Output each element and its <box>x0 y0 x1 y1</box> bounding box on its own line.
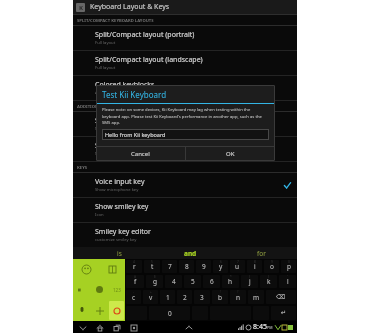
button[interactable]: ! <box>212 290 228 304</box>
staticText: 2 <box>183 293 187 302</box>
staticText: Show microphone key <box>95 187 139 193</box>
button[interactable]: 5 <box>184 275 201 288</box>
button[interactable]: 6 <box>213 260 228 273</box>
staticText: K <box>79 4 83 12</box>
button[interactable]: - <box>126 290 141 304</box>
button[interactable]: and <box>155 247 226 259</box>
staticText: Full layout <box>95 40 116 46</box>
button[interactable]: for <box>226 247 297 259</box>
button[interactable]: $ <box>146 275 163 288</box>
button[interactable]: 0 <box>149 306 190 320</box>
button[interactable]: ) <box>260 275 277 288</box>
staticText: l <box>287 277 289 286</box>
staticText: * <box>230 275 232 279</box>
staticText: KEYS <box>77 165 88 171</box>
staticText: b <box>218 293 222 302</box>
button[interactable]: 3 <box>194 290 210 304</box>
button[interactable]: 9 <box>264 260 279 273</box>
button[interactable]: Home <box>94 322 105 333</box>
staticText: 6 <box>220 260 222 264</box>
button[interactable]: 8 <box>179 260 194 273</box>
button[interactable]: ↵ <box>271 306 296 320</box>
button[interactable]: ⌫ <box>266 290 296 304</box>
staticText: Icon <box>95 212 104 218</box>
staticText: Test Kii Keyboard <box>102 89 167 100</box>
staticText: j <box>249 277 251 286</box>
button[interactable]: 123 <box>108 279 125 300</box>
button[interactable]: Split/Compact layout (portrait) <box>73 26 297 50</box>
button[interactable]: Recent apps <box>111 322 122 333</box>
staticText: + <box>150 290 152 294</box>
button[interactable]: Show smiley key <box>73 198 297 222</box>
staticText: Split/Compact layout (landscape) <box>95 55 203 65</box>
button[interactable]: 0 <box>281 260 296 273</box>
staticText: Keyboard Layout & Keys <box>90 2 170 12</box>
button[interactable]: Show bottom arrow row <box>73 137 297 161</box>
button[interactable]: 4 <box>165 275 182 288</box>
button[interactable]: 6 <box>203 275 220 288</box>
staticText: Split/Compact layout (portrait) <box>95 30 195 40</box>
staticText: f <box>134 277 137 286</box>
button[interactable]: Voice input <box>73 300 91 321</box>
button[interactable]: ( <box>241 275 258 288</box>
button[interactable]: 4 <box>126 260 142 273</box>
button[interactable]: Sound <box>73 279 91 300</box>
button[interactable]: Show top number row <box>73 112 297 136</box>
staticText: i <box>254 262 256 271</box>
button[interactable]: Hide keyboard <box>183 322 194 333</box>
button[interactable]: 5 <box>144 260 160 273</box>
button[interactable]: * <box>222 275 239 288</box>
button[interactable]: Back <box>77 322 88 333</box>
staticText: Voice input key <box>95 177 145 187</box>
button[interactable]: Hello from Kii keyboard <box>102 129 269 140</box>
button[interactable]: is <box>83 247 155 259</box>
button[interactable]: Smiley <box>73 259 99 279</box>
button[interactable]: ? <box>230 290 246 304</box>
staticText: Please note: on some devices, Kii Keyboa… <box>102 107 269 125</box>
button[interactable]: , <box>248 290 264 304</box>
button[interactable]: 2 <box>177 290 192 304</box>
button[interactable]: + <box>143 290 158 304</box>
staticText: n <box>236 293 241 302</box>
staticText: m <box>253 293 260 302</box>
button[interactable]: Split layout <box>99 259 125 279</box>
staticText: ! <box>220 290 221 294</box>
staticText: Show smiley key <box>95 202 149 212</box>
button[interactable]: Smiley key editor <box>73 223 297 247</box>
button[interactable]: Colored keyblocks <box>73 76 297 100</box>
button[interactable]: 8 <box>247 260 262 273</box>
button[interactable]: Voice input key <box>73 173 297 197</box>
staticText: ↵ <box>281 309 287 317</box>
staticText: 1 <box>166 293 170 302</box>
staticText: ( <box>249 275 250 279</box>
button[interactable]: 9 <box>196 260 211 273</box>
button[interactable]: # <box>126 275 144 288</box>
button[interactable]: ' <box>279 275 296 288</box>
staticText: PM <box>267 325 273 330</box>
staticText: Hello from Kii keyboard <box>105 131 166 138</box>
staticText: 9 <box>202 262 206 271</box>
staticText: 8 <box>254 260 256 264</box>
button[interactable]: Move keyboard <box>91 300 108 321</box>
button[interactable]: Split/Compact layout (landscape) <box>73 51 297 75</box>
button[interactable]: Close keyboard <box>109 301 124 320</box>
staticText: customize smiley key <box>95 237 137 243</box>
staticText: g <box>153 277 157 286</box>
staticText: 0 <box>168 309 172 318</box>
button[interactable]: 7 <box>230 260 245 273</box>
button[interactable]: 7 <box>162 260 177 273</box>
button[interactable]: Screenshot <box>128 322 139 333</box>
button[interactable]: OK <box>186 147 275 161</box>
staticText: 0 <box>288 260 290 264</box>
staticText: is <box>117 249 122 258</box>
button[interactable]: Cancel <box>96 147 185 161</box>
button[interactable]: 1 <box>160 290 175 304</box>
button[interactable]: App icon <box>76 3 85 12</box>
button[interactable]: Theme <box>91 279 108 300</box>
